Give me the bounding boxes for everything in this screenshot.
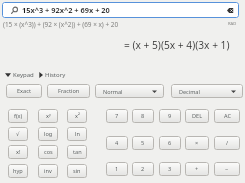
button[interactable]: + — [185, 162, 209, 176]
staticText: − — [225, 165, 229, 173]
button[interactable]: 7 — [106, 109, 128, 123]
button[interactable]: sin — [67, 164, 87, 178]
staticText: 4 — [115, 139, 119, 147]
staticText: RAD — [228, 21, 237, 27]
button[interactable]: AC — [214, 109, 240, 123]
staticText: DEL — [192, 112, 203, 120]
staticText: × — [195, 139, 199, 147]
staticText: = (x + 5)(5x + 4)(3x + 1) — [124, 38, 230, 52]
button[interactable]: × — [185, 136, 209, 150]
staticText: x! — [16, 148, 21, 156]
button[interactable]: History — [39, 71, 69, 79]
staticText: + — [195, 165, 199, 173]
staticText: tan — [73, 148, 82, 156]
staticText: Exact — [17, 87, 31, 95]
button[interactable]: tan — [67, 145, 87, 159]
button[interactable]: Decimal — [171, 84, 243, 98]
staticText: History — [45, 71, 66, 79]
button[interactable]: xʸ — [38, 109, 58, 123]
button[interactable]: ln — [67, 127, 87, 141]
staticText: Normal — [103, 88, 123, 95]
button[interactable]: √ — [8, 127, 28, 141]
button[interactable]: 4 — [106, 136, 128, 150]
staticText: 8 — [141, 112, 145, 120]
button[interactable]: x² — [67, 109, 87, 123]
staticText: AC — [224, 112, 231, 120]
staticText: ln — [75, 130, 80, 138]
staticText: hyp — [13, 167, 23, 175]
staticText: 7 — [115, 112, 119, 120]
staticText: x² — [75, 112, 80, 120]
staticText: 1 — [115, 165, 119, 173]
staticText: inv — [44, 167, 52, 175]
button[interactable]: 5 — [132, 136, 154, 150]
staticText: 5 — [141, 139, 145, 147]
staticText: 3 — [168, 165, 172, 173]
button[interactable]: 6 — [159, 136, 181, 150]
staticText: log — [44, 130, 53, 138]
staticText: xʸ — [46, 112, 51, 120]
button[interactable]: Fraction — [47, 84, 90, 98]
button[interactable]: x! — [8, 145, 28, 159]
button[interactable]: log — [38, 127, 58, 141]
staticText: Fraction — [58, 87, 80, 95]
button[interactable]: 3 — [159, 162, 181, 176]
button[interactable]: Exact — [6, 84, 42, 98]
staticText: / — [226, 139, 229, 147]
button[interactable]: f(x) — [8, 109, 28, 123]
button[interactable]: 8 — [132, 109, 154, 123]
button[interactable]: cos — [38, 145, 58, 159]
button[interactable]: DEL — [185, 109, 209, 123]
staticText: (15 × (x^3)) + (92 × (x^2)) + (69 × x) +… — [3, 20, 119, 29]
staticText: 6 — [168, 139, 172, 147]
button[interactable]: 2 — [132, 162, 154, 176]
staticText: f(x) — [14, 112, 23, 120]
staticText: 15x^3 + 92x^2 + 69x + 20 — [22, 5, 110, 15]
button[interactable]: − — [214, 162, 240, 176]
button[interactable]: 9 — [159, 109, 181, 123]
staticText: 9 — [168, 112, 172, 120]
button[interactable]: 15x^3 + 92x^2 + 69x + 20 — [2, 2, 239, 18]
button[interactable]: / — [214, 136, 240, 150]
staticText: 2 — [141, 165, 145, 173]
button[interactable]: 1 — [106, 162, 128, 176]
staticText: cos — [44, 148, 53, 156]
staticText: sin — [73, 167, 81, 175]
staticText: Decimal — [179, 88, 200, 95]
staticText: √ — [16, 131, 20, 138]
button[interactable]: hyp — [8, 164, 28, 178]
staticText: Keypad — [13, 71, 34, 79]
button[interactable]: Normal — [95, 84, 164, 98]
button[interactable]: Keypad — [5, 71, 38, 79]
button[interactable]: inv — [38, 164, 58, 178]
